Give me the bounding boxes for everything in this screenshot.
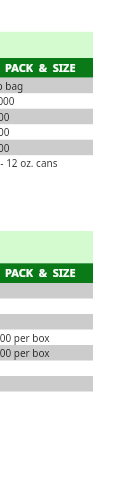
staticText: 5,000 [0, 94, 15, 108]
staticText: PACK & SIZE [5, 60, 76, 75]
button[interactable]: lb bag [0, 78, 93, 94]
button[interactable]: Pack and size column header [0, 58, 93, 78]
staticText: 500 per box [0, 331, 50, 345]
button[interactable]: Pack and size column header [0, 263, 93, 283]
button[interactable]: 1,000 [0, 124, 93, 140]
staticText: 4 - 12 oz. cans [0, 156, 58, 170]
staticText: PACK & SIZE [5, 265, 76, 280]
button[interactable]: 500 per box [0, 330, 93, 346]
staticText: 2,000 [0, 141, 10, 155]
staticText: 1,000 [0, 125, 10, 139]
staticText: 200 per box [0, 346, 50, 360]
staticText: 1,000 [0, 110, 10, 124]
button[interactable]: 2,000 [0, 140, 93, 156]
staticText: lb bag [0, 79, 24, 93]
button[interactable]: 5,000 [0, 93, 93, 109]
button[interactable]: 200 per box [0, 345, 93, 361]
button[interactable]: 4 - 12 oz. cans [0, 155, 93, 171]
button[interactable]: 1,000 [0, 109, 93, 125]
